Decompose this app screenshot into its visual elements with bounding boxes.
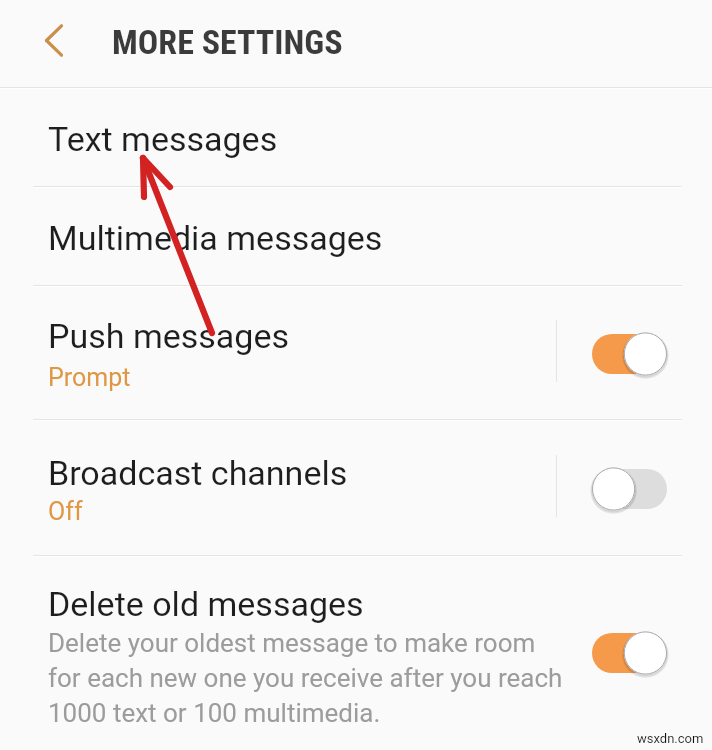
button[interactable]: Text messages <box>0 88 712 186</box>
button[interactable]: Push messages, on <box>580 322 679 386</box>
staticText: Prompt <box>48 363 131 392</box>
button[interactable]: Delete old messages <box>0 556 712 750</box>
staticText: Off <box>48 497 83 526</box>
staticText: Broadcast channels <box>48 453 348 493</box>
staticText: Text messages <box>48 119 278 159</box>
staticText: wsxdn.com <box>637 731 704 746</box>
staticText: Delete your oldest message to make room … <box>48 628 566 728</box>
staticText: Multimedia messages <box>48 218 383 258</box>
staticText: Push messages <box>48 316 290 356</box>
staticText: MORE SETTINGS <box>112 22 343 62</box>
button[interactable]: Broadcast channels <box>0 420 712 555</box>
button[interactable]: Multimedia messages <box>0 187 712 285</box>
button[interactable]: Navigate up <box>26 13 82 69</box>
button[interactable]: Delete old messages, on <box>580 621 679 685</box>
staticText: Delete old messages <box>48 584 364 624</box>
button[interactable]: Push messages <box>0 286 712 419</box>
button[interactable]: Broadcast channels, off <box>580 457 679 521</box>
